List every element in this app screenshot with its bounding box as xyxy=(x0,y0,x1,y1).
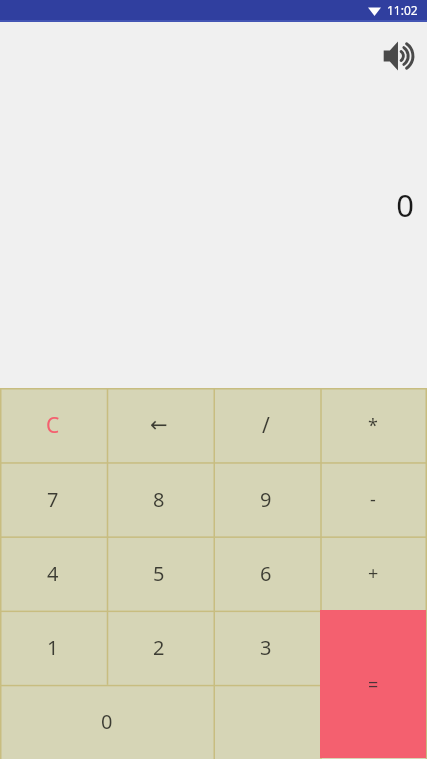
staticText: + xyxy=(368,561,379,586)
button[interactable]: C xyxy=(0,388,106,462)
button[interactable] xyxy=(213,684,319,758)
staticText: 9 xyxy=(260,486,272,513)
button[interactable]: 7 xyxy=(0,462,106,536)
staticText: 5 xyxy=(153,560,165,587)
button[interactable]: = xyxy=(320,610,426,758)
button[interactable]: 2 xyxy=(106,610,212,684)
staticText: 0 xyxy=(101,708,113,735)
button[interactable]: 6 xyxy=(213,536,319,610)
button[interactable]: 0 xyxy=(0,684,213,758)
button[interactable]: 9 xyxy=(213,462,319,536)
staticText: 11:02 xyxy=(387,2,418,18)
button[interactable]: 3 xyxy=(213,610,319,684)
staticText: 2 xyxy=(153,634,165,661)
button[interactable]: 1 xyxy=(0,610,106,684)
button[interactable]: 5 xyxy=(106,536,212,610)
button[interactable]: / xyxy=(213,388,319,462)
button[interactable]: * xyxy=(320,388,426,462)
button[interactable]: Toggle sound xyxy=(377,34,421,78)
staticText: * xyxy=(368,413,378,438)
staticText: 8 xyxy=(153,486,165,513)
button[interactable]: + xyxy=(320,536,426,610)
staticText: 6 xyxy=(260,560,272,587)
button[interactable]: 8 xyxy=(106,462,212,536)
staticText: C xyxy=(46,411,60,440)
staticText: 4 xyxy=(47,560,59,587)
staticText: ← xyxy=(150,413,168,437)
staticText: 3 xyxy=(260,634,272,661)
staticText: / xyxy=(262,411,270,440)
button[interactable]: 4 xyxy=(0,536,106,610)
button[interactable]: ← xyxy=(106,388,212,462)
staticText: - xyxy=(370,487,376,512)
staticText: = xyxy=(368,672,379,697)
staticText: 1 xyxy=(47,634,59,661)
button[interactable]: - xyxy=(320,462,426,536)
staticText: 0 xyxy=(396,184,414,226)
staticText: 7 xyxy=(47,486,59,513)
